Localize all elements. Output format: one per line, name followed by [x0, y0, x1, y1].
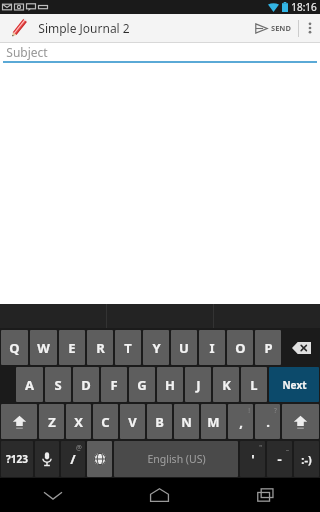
button[interactable]: E: [59, 330, 85, 365]
button[interactable]: W: [30, 330, 57, 365]
button[interactable]: More options: [299, 14, 320, 42]
staticText: E: [68, 339, 76, 357]
button[interactable]: mic: [35, 441, 59, 477]
button[interactable]: L: [241, 367, 267, 402]
staticText: 18:16: [291, 0, 317, 14]
staticText: N: [181, 413, 192, 431]
staticText: !: [248, 406, 250, 415]
button[interactable]: Z: [39, 404, 64, 439]
staticText: S: [54, 376, 62, 394]
button[interactable]: T: [115, 330, 141, 365]
staticText: K: [222, 376, 231, 394]
staticText: V: [128, 413, 137, 431]
staticText: English (US): [147, 452, 206, 466]
button[interactable]: G: [129, 367, 155, 402]
button[interactable]: A: [16, 367, 43, 402]
button[interactable]: N: [174, 404, 199, 439]
staticText: _: [286, 443, 289, 452]
staticText: O: [235, 339, 246, 357]
staticText: F: [110, 376, 118, 394]
button[interactable]: F: [101, 367, 127, 402]
button[interactable]: ,: [228, 404, 253, 439]
button[interactable]: shift: [1, 404, 37, 439]
button[interactable]: H: [157, 367, 183, 402]
staticText: X: [74, 413, 83, 431]
staticText: ?: [274, 406, 277, 415]
button[interactable]: Back: [0, 478, 106, 512]
button[interactable]: D: [73, 367, 99, 402]
button[interactable]: I: [199, 330, 225, 365]
button[interactable]: B: [147, 404, 172, 439]
staticText: M: [207, 413, 220, 431]
button[interactable]: /: [61, 441, 85, 477]
staticText: U: [179, 339, 189, 357]
button[interactable]: Home: [106, 478, 213, 512]
staticText: SEND: [271, 23, 291, 33]
button[interactable]: S: [45, 367, 71, 402]
button[interactable]: ?123: [1, 441, 33, 477]
staticText: R: [96, 339, 105, 357]
staticText: Subject: [6, 44, 48, 60]
staticText: A: [25, 376, 34, 394]
staticText: H: [165, 376, 175, 394]
staticText: Simple Journal 2: [38, 20, 130, 36]
button[interactable]: Recent apps: [213, 478, 320, 512]
button[interactable]: Y: [143, 330, 169, 365]
button[interactable]: M: [201, 404, 226, 439]
button[interactable]: globe: [87, 441, 112, 477]
staticText: ": [259, 443, 262, 452]
button[interactable]: del: [283, 330, 319, 365]
staticText: ?123: [6, 452, 28, 466]
button[interactable]: R: [87, 330, 113, 365]
staticText: Next: [282, 378, 307, 392]
staticText: Z: [48, 413, 56, 431]
staticText: C: [101, 413, 110, 431]
button[interactable]: Next: [269, 367, 319, 402]
button[interactable]: O: [227, 330, 253, 365]
staticText: @: [76, 443, 82, 452]
staticText: /: [70, 450, 76, 468]
staticText: ,: [239, 413, 243, 431]
staticText: :-): [301, 452, 312, 467]
staticText: -: [277, 450, 282, 468]
staticText: B: [155, 413, 164, 431]
button[interactable]: .: [255, 404, 280, 439]
button[interactable]: smiley: [294, 441, 319, 477]
button[interactable]: ': [240, 441, 265, 477]
staticText: Y: [152, 339, 161, 357]
button[interactable]: U: [171, 330, 197, 365]
button[interactable]: -: [267, 441, 292, 477]
staticText: T: [124, 339, 132, 357]
button[interactable]: Subject: [0, 43, 320, 63]
staticText: ': [251, 450, 255, 468]
button[interactable]: English (US): [114, 441, 238, 477]
staticText: W: [37, 339, 50, 357]
staticText: P: [264, 339, 273, 357]
staticText: D: [81, 376, 91, 394]
button[interactable]: K: [213, 367, 239, 402]
staticText: I: [209, 339, 215, 357]
button[interactable]: shift: [282, 404, 319, 439]
staticText: Q: [9, 339, 20, 357]
button[interactable]: C: [93, 404, 118, 439]
button[interactable]: Q: [1, 330, 28, 365]
staticText: G: [137, 376, 147, 394]
staticText: J: [196, 376, 201, 394]
staticText: .: [266, 413, 270, 431]
button[interactable]: SEND: [248, 14, 298, 42]
staticText: L: [250, 376, 258, 394]
button[interactable]: P: [255, 330, 281, 365]
button[interactable]: J: [185, 367, 211, 402]
button[interactable]: V: [120, 404, 145, 439]
button[interactable]: Simple Journal 2: [0, 14, 38, 42]
button[interactable]: X: [66, 404, 91, 439]
